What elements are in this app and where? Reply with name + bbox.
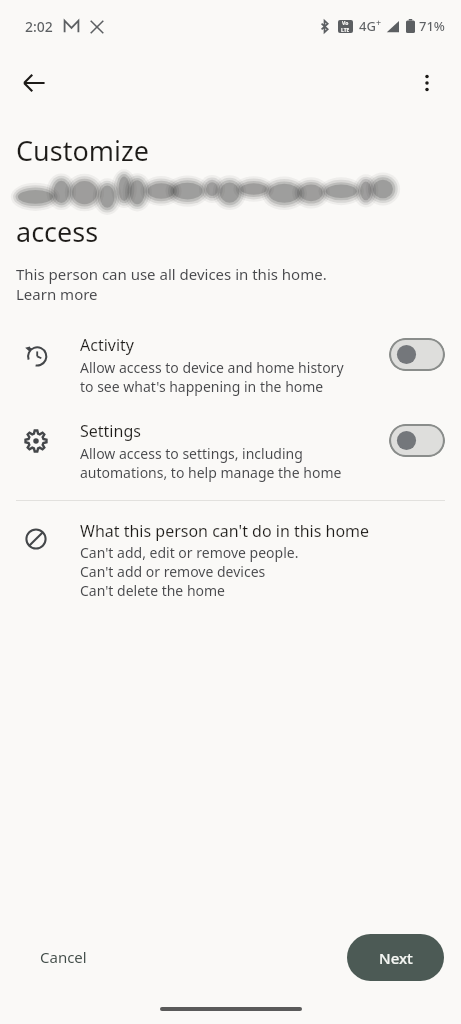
staticText: LTE (341, 27, 350, 33)
staticText: Can't add or remove devices (80, 562, 266, 581)
staticText: Learn more (16, 284, 98, 304)
button[interactable]: Cancel (22, 937, 105, 977)
staticText: 2:02 (25, 17, 53, 36)
button[interactable]: Toggle (389, 424, 445, 457)
staticText: automations, to help manage the home (80, 463, 342, 482)
staticText: Customize (16, 132, 149, 169)
button[interactable]: Activity (0, 332, 461, 396)
button[interactable]: Learn more (16, 284, 98, 304)
staticText: Can't delete the home (80, 581, 226, 600)
staticText: + (376, 16, 382, 28)
staticText: to see what's happening in the home (80, 377, 324, 396)
staticText: What this person can't do in this home (80, 520, 370, 542)
staticText: Allow access to device and home history (80, 358, 344, 377)
button[interactable]: Next (347, 934, 444, 981)
button[interactable]: Settings (0, 418, 461, 482)
staticText: 4G (359, 17, 376, 35)
staticText: Can't add, edit or remove people. (80, 543, 299, 562)
staticText: Settings (80, 420, 141, 442)
button[interactable]: Toggle (389, 338, 445, 371)
staticText: access (16, 213, 99, 250)
button[interactable]: More options (403, 59, 451, 107)
staticText: This person can use all devices in this … (16, 264, 327, 284)
staticText: Next (379, 948, 413, 968)
staticText: Vo (342, 20, 349, 27)
button[interactable]: Back (10, 59, 58, 107)
staticText: Activity (80, 334, 135, 356)
staticText: Allow access to settings, including (80, 444, 303, 463)
staticText: 71% (419, 17, 445, 35)
staticText: Cancel (40, 947, 87, 967)
